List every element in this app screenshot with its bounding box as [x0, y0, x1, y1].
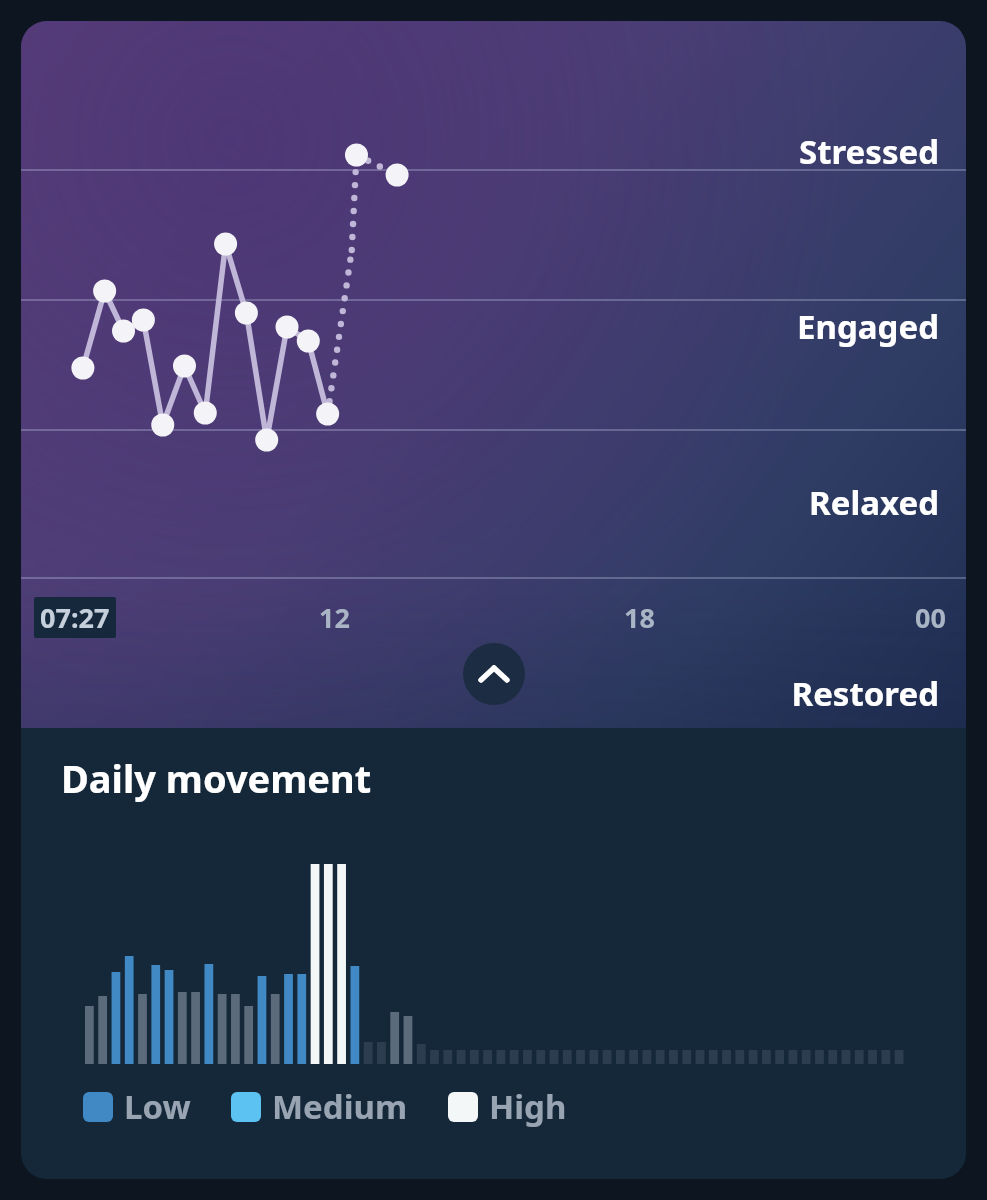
- staticText: Daily movement: [61, 752, 372, 804]
- staticText: 00: [915, 599, 946, 636]
- staticText: 18: [624, 599, 655, 636]
- staticText: Stressed: [21, 129, 939, 174]
- button[interactable]: Medium: [231, 1084, 408, 1129]
- staticText: Medium: [272, 1084, 408, 1129]
- staticText: Relaxed: [21, 480, 939, 525]
- staticText: High: [489, 1084, 567, 1129]
- staticText: Low: [124, 1084, 191, 1129]
- button[interactable]: High: [448, 1084, 567, 1129]
- staticText: 07:27: [40, 599, 110, 636]
- button[interactable]: Low: [83, 1084, 191, 1129]
- staticText: Engaged: [21, 304, 939, 349]
- button[interactable]: Expand: [463, 643, 525, 705]
- staticText: Restored: [21, 671, 939, 716]
- staticText: 12: [319, 599, 350, 636]
